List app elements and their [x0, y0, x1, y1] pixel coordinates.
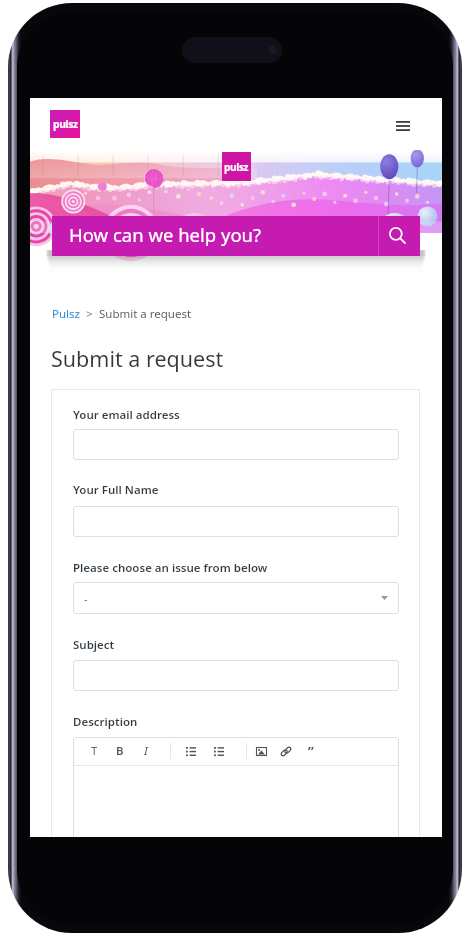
button[interactable] [73, 429, 399, 460]
staticText: B [116, 743, 124, 759]
button[interactable]: Open menu [385, 108, 421, 144]
button[interactable] [73, 506, 399, 537]
staticText: Your email address [73, 407, 180, 423]
staticText: pulsz [53, 117, 78, 131]
button[interactable]: Pulsz [52, 306, 80, 322]
staticText: Pulsz [52, 306, 80, 322]
staticText: ” [308, 742, 314, 760]
button[interactable]: Insert link [275, 737, 297, 765]
staticText: Description [73, 714, 138, 730]
button[interactable] [73, 660, 399, 691]
button[interactable]: Bulleted list [180, 737, 202, 765]
staticText: Please choose an issue from below [73, 560, 268, 576]
button[interactable]: Search [378, 216, 420, 256]
staticText: T [91, 743, 98, 759]
button[interactable]: Numbered list [208, 737, 230, 765]
staticText: Your Full Name [73, 482, 159, 498]
button[interactable]: How can we help you? [52, 216, 420, 256]
staticText: How can we help you? [69, 222, 262, 247]
button[interactable]: Insert image [250, 737, 272, 765]
button[interactable]: pulsz [50, 110, 80, 138]
button[interactable]: ” [300, 737, 322, 765]
button[interactable]: I [135, 737, 157, 765]
staticText: I [144, 743, 148, 759]
staticText: Submit a request [51, 344, 224, 373]
staticText: pulsz [224, 160, 249, 174]
button[interactable]: - [73, 582, 399, 614]
staticText: Submit a request [99, 306, 192, 322]
button[interactable]: B [109, 737, 131, 765]
staticText: - [84, 591, 88, 606]
staticText: > [80, 306, 99, 322]
button[interactable]: T [83, 737, 105, 765]
staticText: Subject [73, 637, 115, 653]
